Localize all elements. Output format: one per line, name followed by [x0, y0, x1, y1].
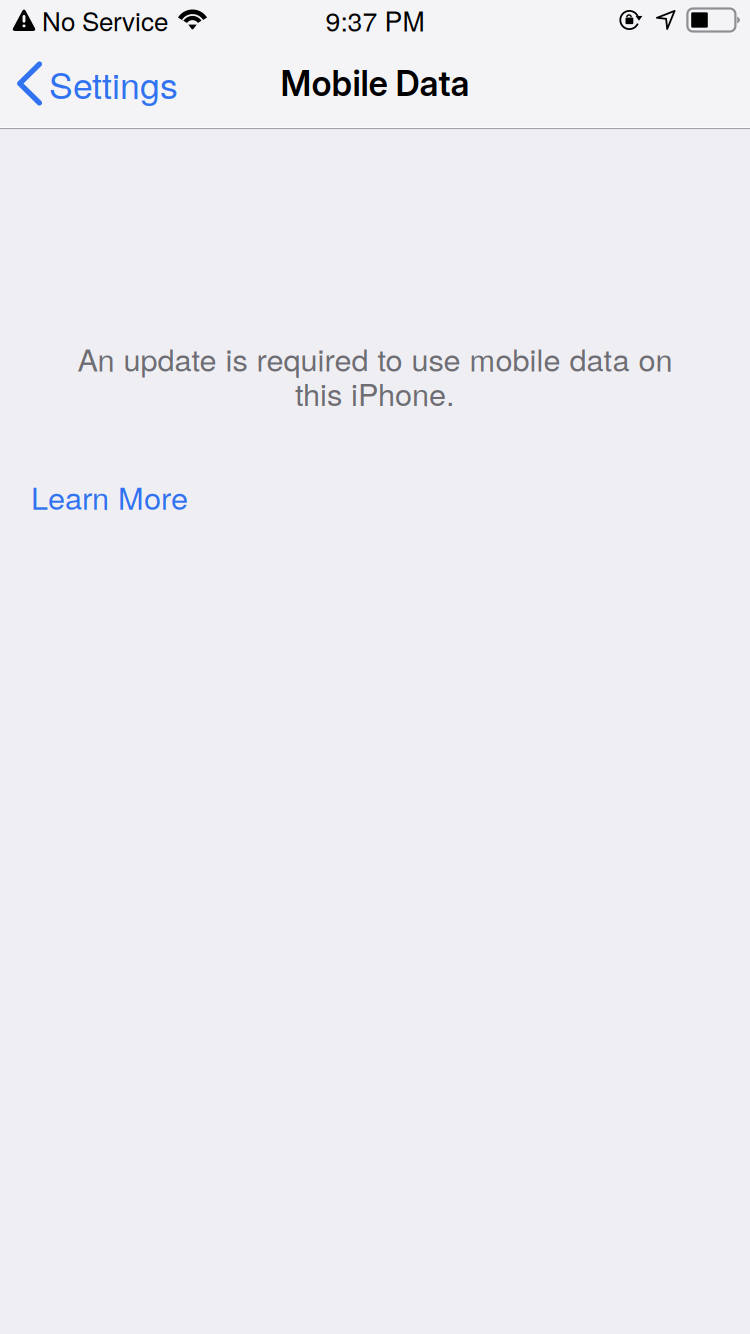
staticText: this iPhone.	[295, 371, 455, 415]
staticText: Mobile Data	[280, 63, 469, 104]
staticText: Learn More	[31, 475, 188, 518]
button[interactable]: Learn More	[0, 464, 210, 529]
button[interactable]: Settings	[0, 39, 194, 127]
staticText: An update is required to use mobile data…	[77, 336, 672, 380]
staticText: Settings	[49, 58, 178, 109]
staticText: 9:37 PM	[325, 1, 424, 39]
staticText: No Service	[42, 1, 168, 39]
